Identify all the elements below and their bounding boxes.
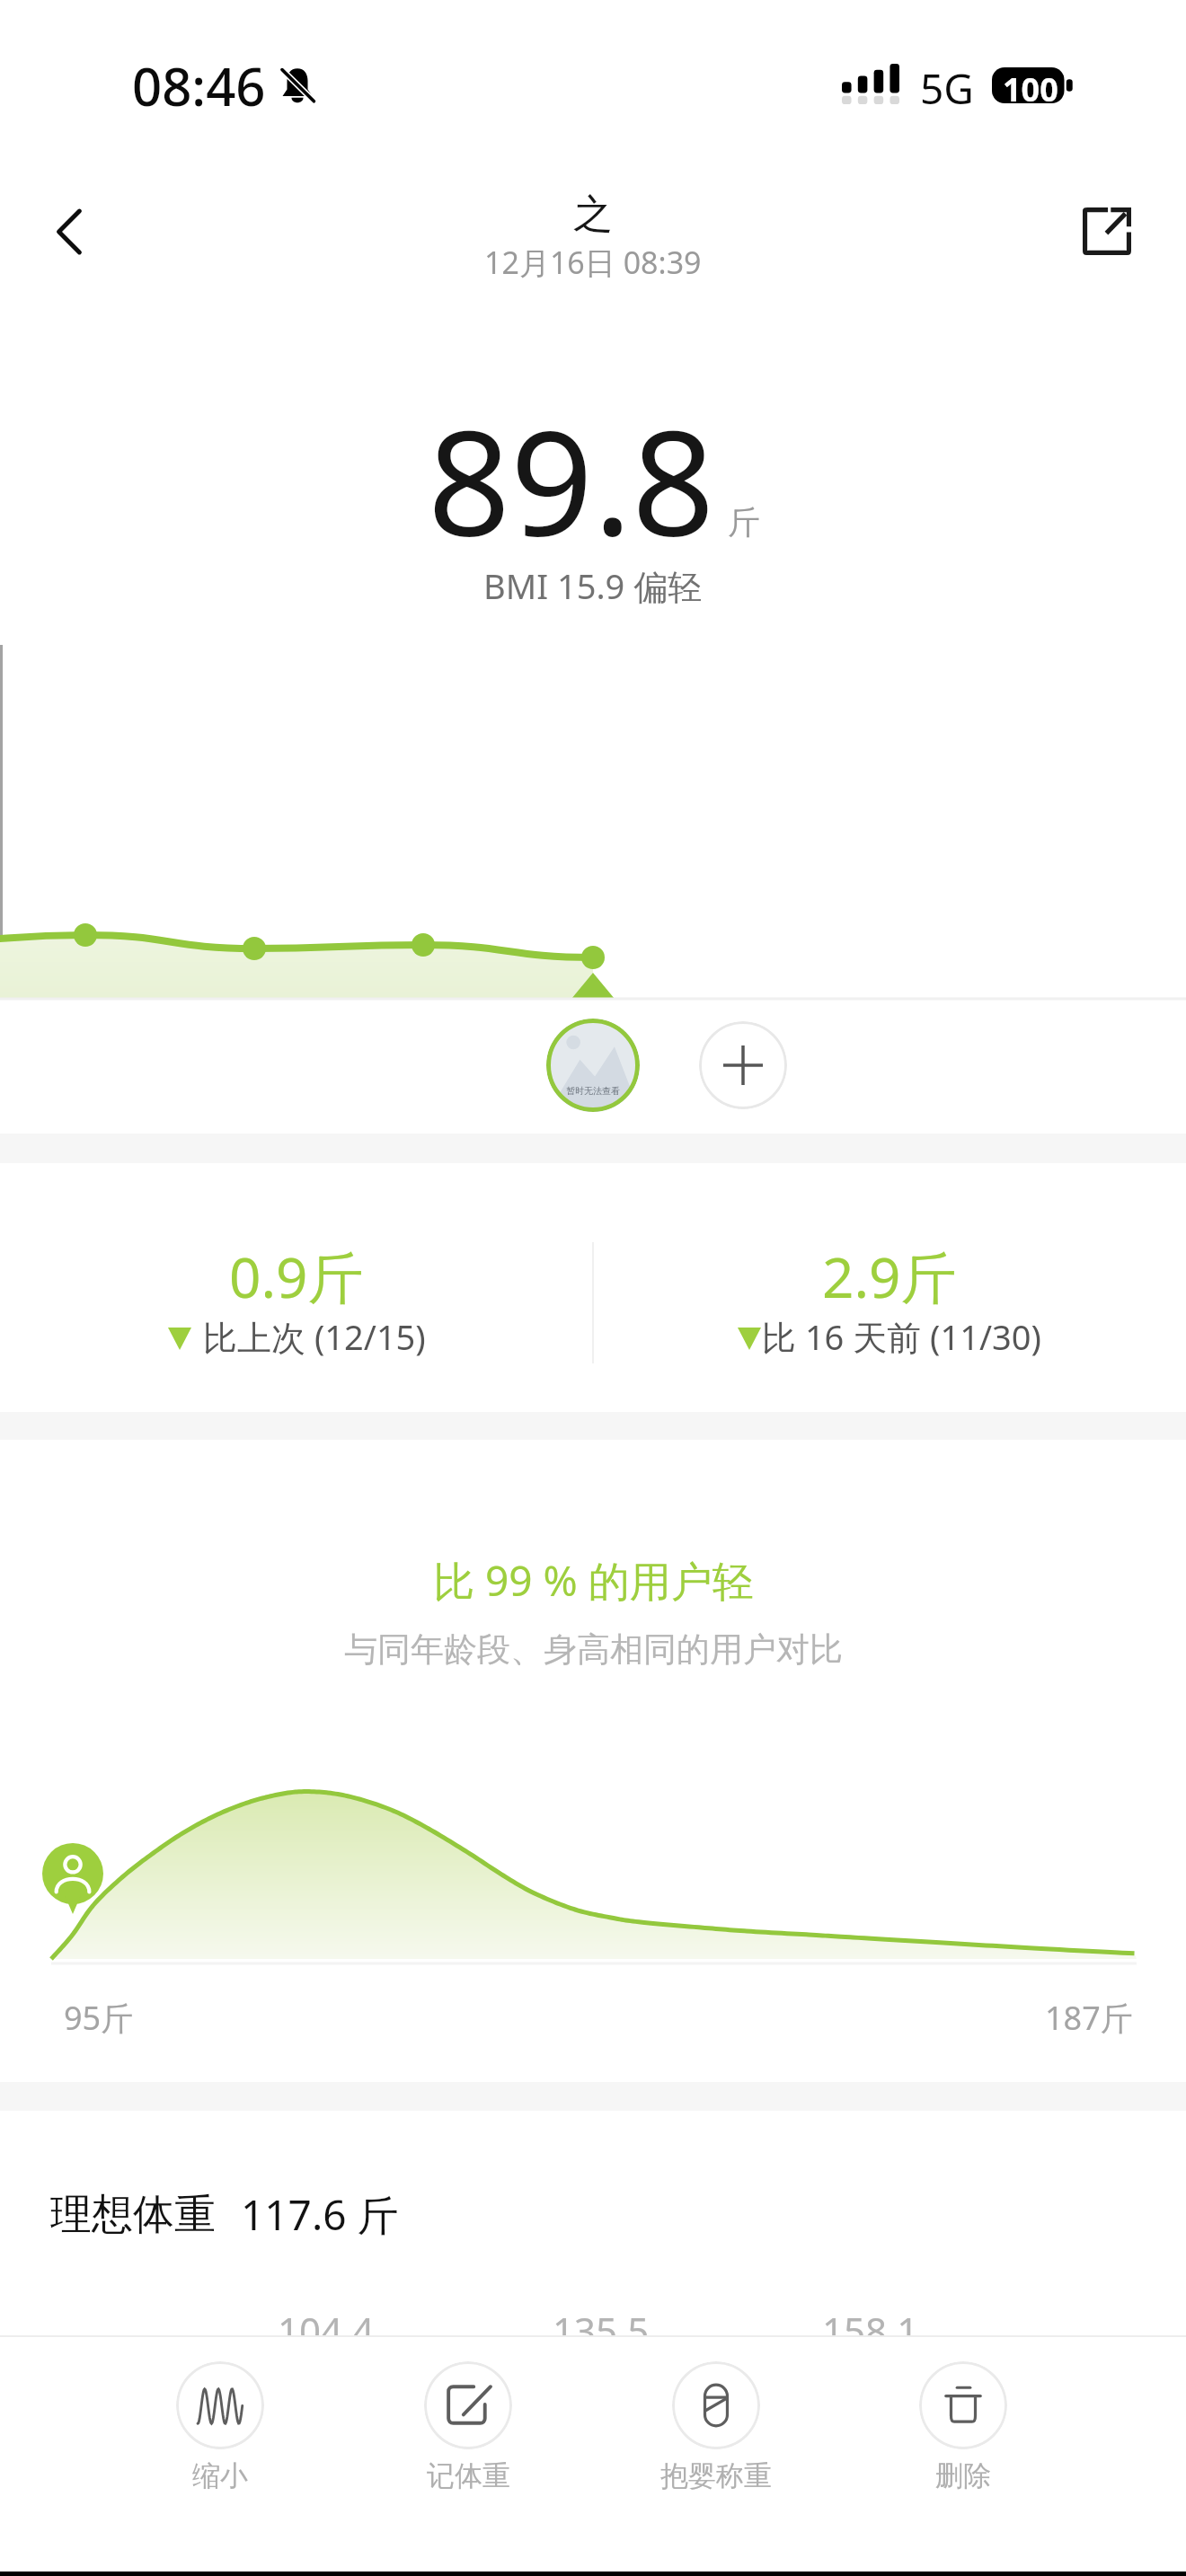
staticText: 104.4 [278,2305,375,2356]
staticText: 12月16日 08:39 [484,242,702,283]
button[interactable]: Photo [546,1019,640,1112]
staticText: 5G [920,60,974,117]
staticText: 100 [1003,67,1058,103]
staticText: BMI 15.9 偏轻 [483,562,703,609]
staticText: 08:46 [132,50,266,121]
button[interactable]: Add photo [699,1021,787,1109]
button[interactable]: Back [16,178,124,286]
staticText: 抱婴称重 [660,2458,772,2493]
button[interactable]: Weigh baby [635,2361,797,2493]
staticText: 187斤 [1045,1996,1133,2040]
staticText: 比上次 (12/15) [203,1313,426,1360]
staticText: 与同年龄段、身高相同的用户对比 [344,1628,843,1671]
button[interactable]: 2.9斤 [593,1163,1186,1412]
staticText: 95斤 [64,1996,134,2040]
staticText: 89.8 [428,381,715,578]
staticText: 之 [573,190,613,239]
button[interactable]: Share [1053,177,1161,285]
staticText: 2.9斤 [822,1239,957,1315]
staticText: 斤 [728,502,760,543]
button[interactable]: Shrink [139,2361,301,2493]
staticText: 记体重 [427,2458,510,2493]
button[interactable]: Delete [882,2361,1044,2493]
staticText: 158.1 [822,2305,919,2356]
staticText: 0.9斤 [229,1239,364,1315]
staticText: 理想体重 [50,2189,216,2241]
staticText: 比 16 天前 (11/30) [762,1313,1041,1360]
staticText: 135.5 [553,2305,650,2356]
staticText: 删除 [935,2458,991,2493]
staticText: 比 99 % 的用户轻 [433,1552,754,1609]
staticText: 117.6 斤 [241,2186,399,2243]
staticText: 缩小 [192,2458,248,2493]
button[interactable]: 0.9斤 [0,1163,593,1412]
staticText: 暂时无法查看 [566,1085,620,1097]
button[interactable]: Record weight [387,2361,549,2493]
